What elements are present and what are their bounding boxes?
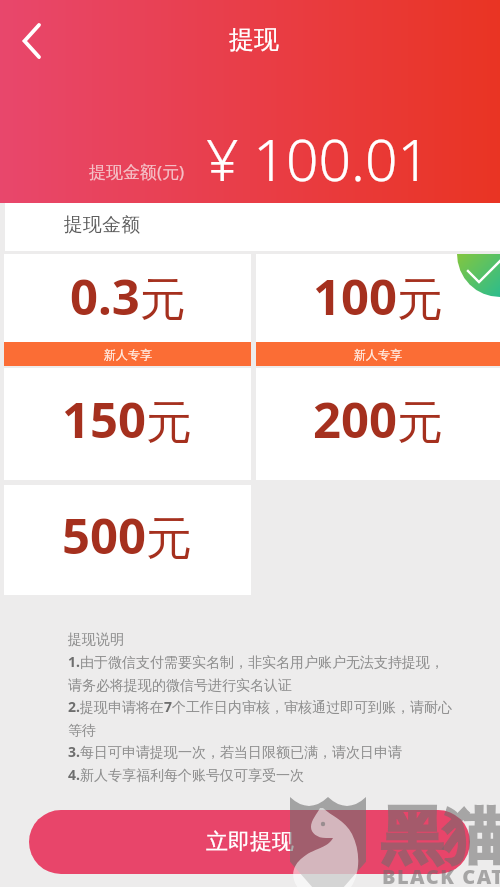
staticText: 100元	[313, 263, 444, 330]
button[interactable]: Back	[4, 13, 60, 69]
staticText: 提现	[229, 24, 279, 55]
button[interactable]: 150元	[4, 368, 251, 480]
staticText: 黑猫	[381, 797, 500, 875]
staticText: 新人专享	[354, 347, 402, 362]
button[interactable]: 0.3元	[4, 254, 251, 366]
button[interactable]: 立即提现	[29, 810, 470, 874]
staticText: 立即提现	[206, 828, 294, 856]
staticText: 提现金额	[64, 213, 140, 237]
button[interactable]: 200元	[256, 368, 500, 480]
staticText: BLACK CAT	[382, 863, 500, 887]
staticText: 200元	[313, 386, 444, 453]
button[interactable]: 500元	[4, 485, 251, 595]
staticText: ¥ 100.01	[206, 120, 431, 198]
staticText: 提现说明 1.由于微信支付需要实名制，非实名用户账户无法支持提现， 请务必将提现…	[68, 631, 452, 785]
staticText: 新人专享	[104, 347, 152, 362]
staticText: 提现金额(元)	[89, 160, 185, 183]
staticText: 500元	[62, 502, 193, 569]
button[interactable]: 100元	[256, 254, 500, 366]
staticText: 150元	[62, 386, 193, 453]
staticText: 0.3元	[70, 263, 186, 330]
